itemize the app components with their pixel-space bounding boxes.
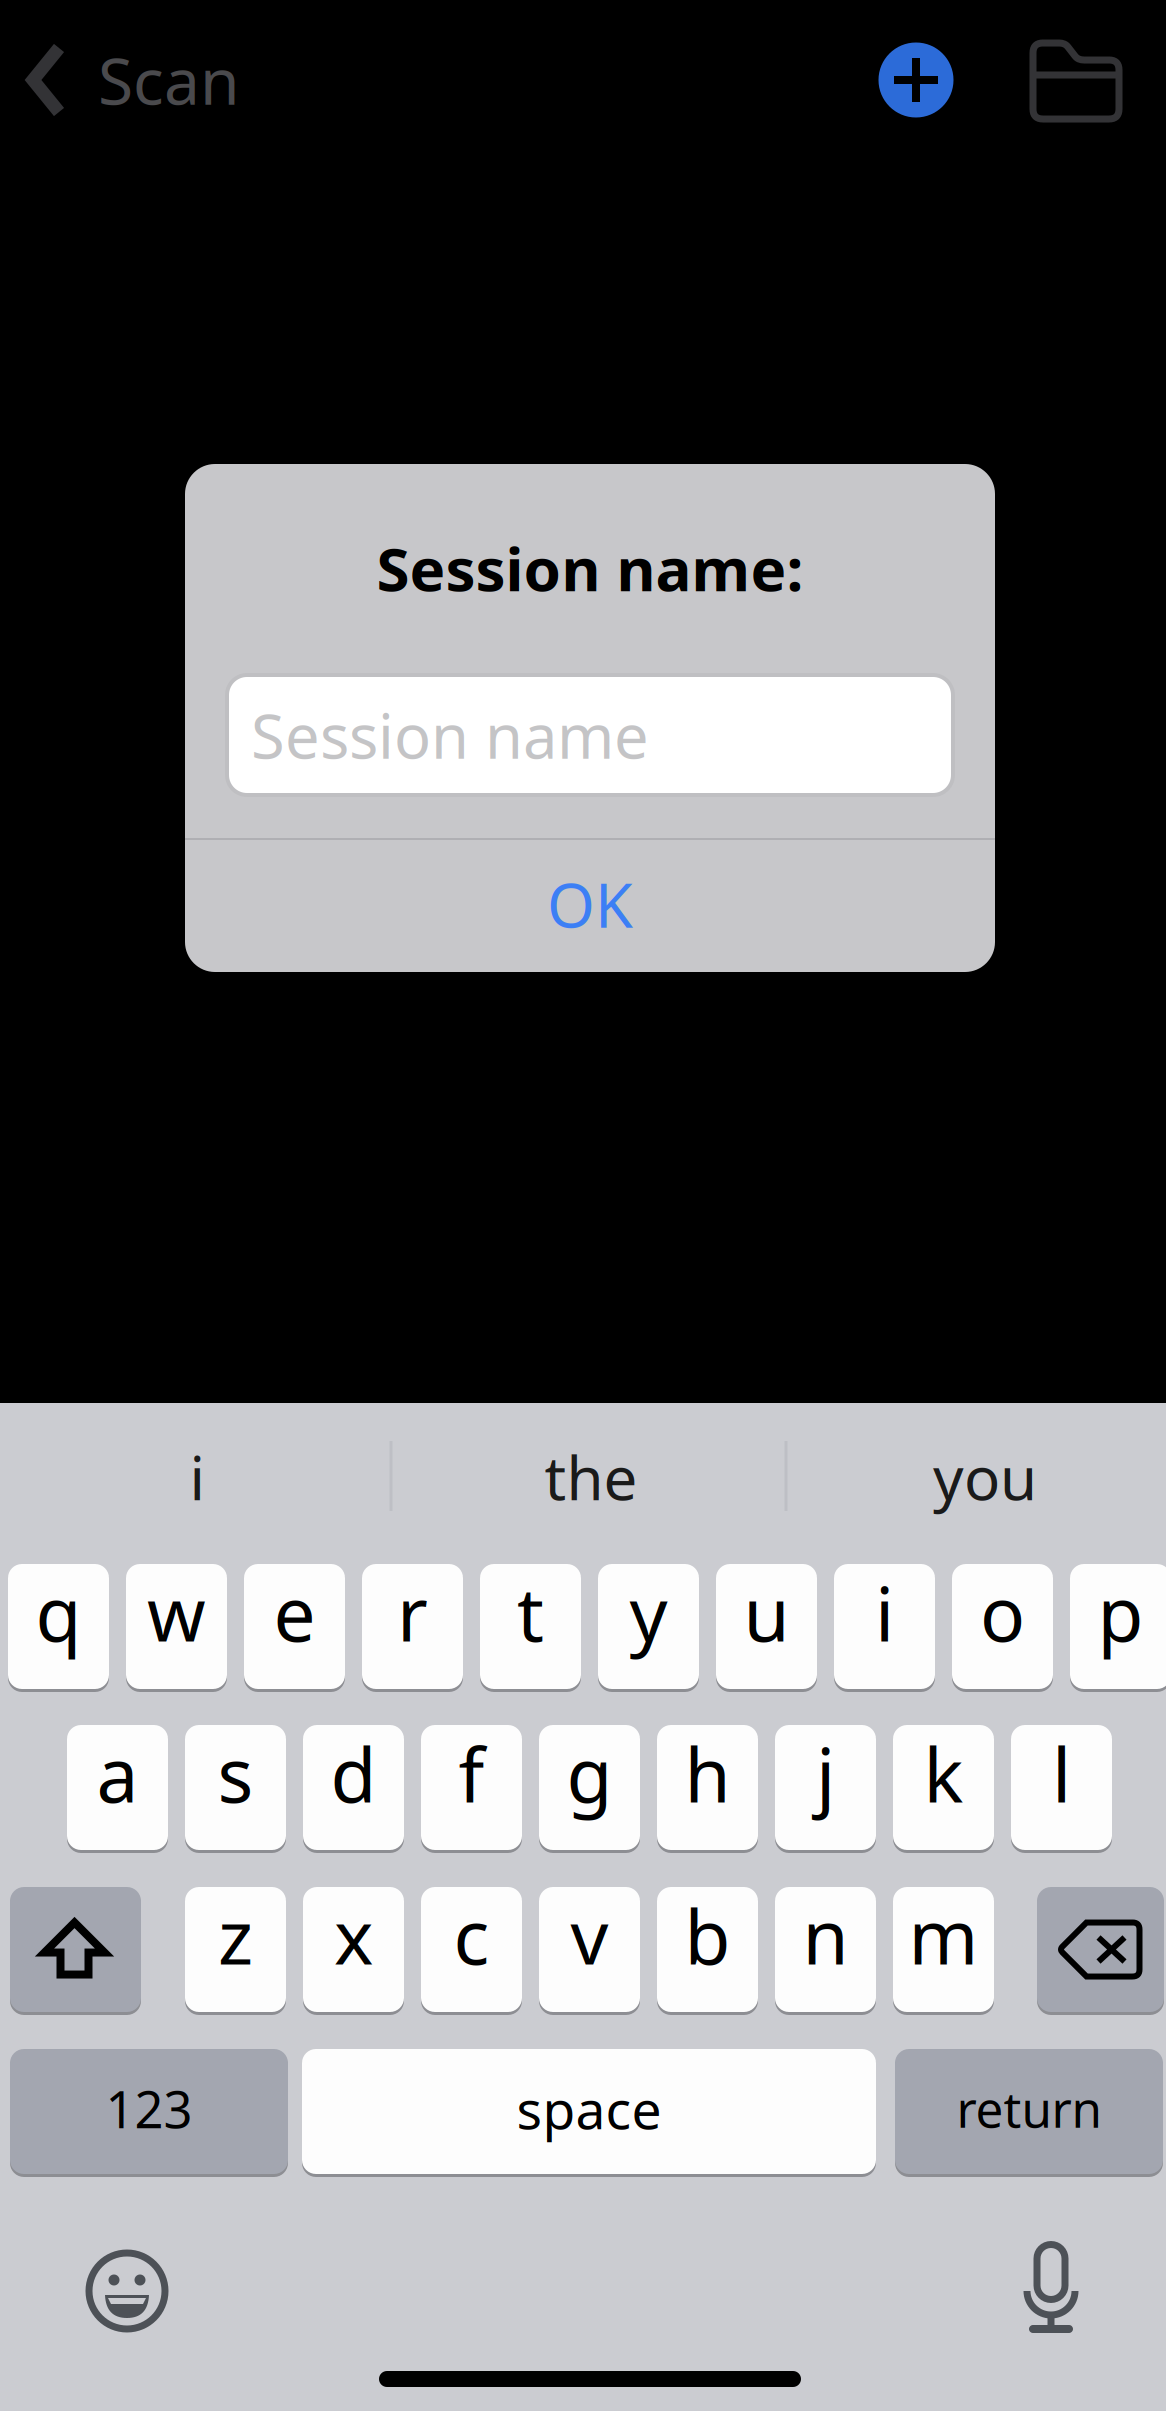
staticText: e [273, 1563, 315, 1662]
button[interactable]: k [893, 1721, 994, 1854]
button[interactable]: d [303, 1721, 404, 1854]
button[interactable]: z [185, 1883, 286, 2016]
staticText: return [956, 2076, 1101, 2141]
staticText: s [217, 1724, 253, 1823]
staticText: Scan [98, 37, 240, 122]
staticText: x [334, 1886, 373, 1985]
staticText: o [980, 1563, 1025, 1662]
button[interactable]: o [952, 1560, 1053, 1693]
staticText: r [397, 1563, 428, 1662]
staticText: y [629, 1563, 667, 1662]
staticText: i [875, 1563, 894, 1662]
button[interactable]: 123 [10, 2045, 288, 2178]
staticText: 123 [105, 2075, 192, 2142]
staticText: Session name [251, 694, 649, 776]
button[interactable]: i [7, 1403, 387, 1523]
button[interactable]: a [67, 1721, 168, 1854]
staticText: q [35, 1563, 81, 1662]
button[interactable]: w [126, 1560, 227, 1693]
staticText: you [933, 1437, 1037, 1517]
button[interactable]: Add [872, 36, 960, 124]
staticText: i [189, 1437, 204, 1517]
button[interactable]: Dictation [1015, 2240, 1087, 2336]
staticText: m [908, 1886, 978, 1985]
staticText: g [566, 1724, 612, 1823]
button[interactable]: l [1011, 1721, 1112, 1854]
button[interactable]: r [362, 1560, 463, 1693]
button[interactable]: Emoji [85, 2249, 169, 2333]
button[interactable]: p [1070, 1560, 1166, 1693]
button[interactable]: g [539, 1721, 640, 1854]
button[interactable]: space [302, 2045, 876, 2178]
button[interactable]: i [834, 1560, 935, 1693]
button[interactable]: b [657, 1883, 758, 2016]
staticText: t [517, 1563, 544, 1662]
button[interactable]: s [185, 1721, 286, 1854]
button[interactable]: Delete [1037, 1883, 1164, 2016]
staticText: Session name: [376, 528, 803, 608]
staticText: l [1052, 1724, 1071, 1823]
staticText: p [1097, 1563, 1143, 1662]
button[interactable]: e [244, 1560, 345, 1693]
staticText: u [743, 1563, 789, 1662]
staticText: v [570, 1886, 608, 1985]
button[interactable]: h [657, 1721, 758, 1854]
staticText: h [684, 1724, 730, 1823]
button[interactable]: Folders [1028, 35, 1124, 127]
staticText: k [923, 1724, 963, 1823]
button[interactable]: u [716, 1560, 817, 1693]
staticText: space [516, 2073, 661, 2144]
staticText: b [684, 1886, 730, 1985]
button[interactable]: j [775, 1721, 876, 1854]
button[interactable]: y [598, 1560, 699, 1693]
button[interactable]: you [795, 1403, 1166, 1523]
button[interactable]: n [775, 1883, 876, 2016]
button[interactable]: c [421, 1883, 522, 2016]
button[interactable]: Scan [0, 25, 340, 135]
staticText: z [218, 1886, 253, 1985]
staticText: f [458, 1724, 484, 1823]
staticText: j [816, 1724, 835, 1823]
button[interactable]: the [401, 1403, 781, 1523]
staticText: the [544, 1437, 637, 1517]
staticText: OK [547, 863, 633, 945]
button[interactable]: t [480, 1560, 581, 1693]
button[interactable]: q [8, 1560, 109, 1693]
button[interactable]: Session name [227, 675, 953, 795]
button[interactable]: return [895, 2045, 1163, 2178]
button[interactable]: OK [185, 837, 995, 971]
staticText: n [802, 1886, 848, 1985]
button[interactable]: Shift [10, 1883, 141, 2016]
button[interactable]: x [303, 1883, 404, 2016]
button[interactable]: v [539, 1883, 640, 2016]
staticText: c [453, 1886, 489, 1985]
button[interactable]: f [421, 1721, 522, 1854]
staticText: d [330, 1724, 376, 1823]
button[interactable]: m [893, 1883, 994, 2016]
staticText: w [147, 1563, 206, 1662]
staticText: a [96, 1724, 138, 1823]
